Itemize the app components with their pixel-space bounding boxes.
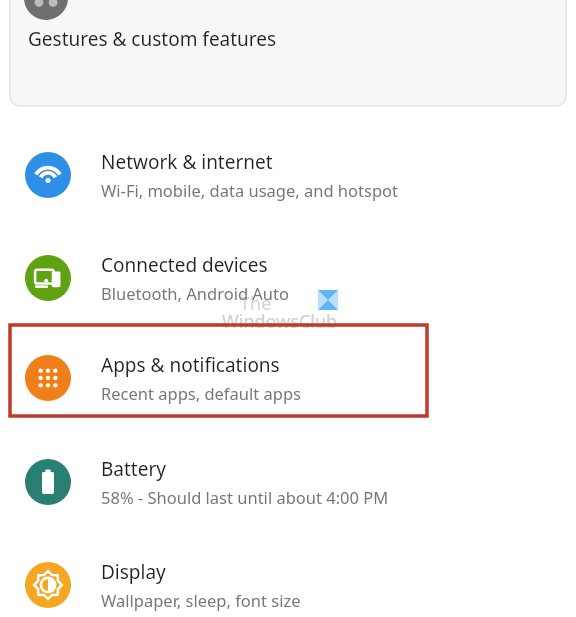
staticText: Recent apps, default apps bbox=[101, 382, 301, 404]
staticText: Network & internet bbox=[101, 149, 273, 175]
staticText: The bbox=[240, 291, 272, 316]
staticText: Battery bbox=[101, 456, 166, 482]
button[interactable]: Apps & notifications bbox=[0, 332, 576, 424]
button[interactable]: Display bbox=[0, 539, 576, 617]
staticText: 58% - Should last until about 4:00 PM bbox=[101, 486, 389, 508]
staticText: Apps & notifications bbox=[101, 352, 280, 378]
staticText: Connected devices bbox=[101, 252, 268, 278]
staticText: Bluetooth, Android Auto bbox=[101, 282, 290, 304]
staticText: WindowsClub bbox=[222, 309, 338, 334]
staticText: Wi-Fi, mobile, data usage, and hotspot bbox=[101, 179, 398, 201]
button[interactable]: Connected devices bbox=[0, 232, 576, 324]
staticText: Gestures & custom features bbox=[28, 26, 277, 52]
button[interactable] bbox=[10, 0, 566, 106]
button[interactable]: Network & internet bbox=[0, 129, 576, 221]
staticText: Wallpaper, sleep, font size bbox=[101, 589, 301, 611]
staticText: Display bbox=[101, 559, 166, 585]
button[interactable]: Battery bbox=[0, 436, 576, 528]
